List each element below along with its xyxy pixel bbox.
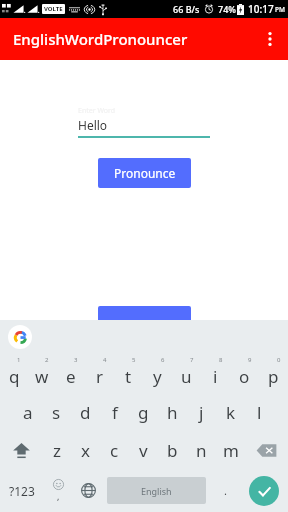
staticText: i xyxy=(213,365,218,388)
button[interactable]: 6 xyxy=(143,353,172,393)
staticText: 7 xyxy=(190,356,194,364)
button[interactable]: 9 xyxy=(230,353,259,393)
button[interactable]: x xyxy=(71,431,100,469)
button[interactable]: . xyxy=(210,469,240,512)
button[interactable]: Change language xyxy=(73,469,103,512)
staticText: k xyxy=(226,401,236,424)
staticText: f xyxy=(112,401,118,424)
button[interactable]: l xyxy=(245,393,274,431)
staticText: g xyxy=(138,401,149,424)
button[interactable]: g xyxy=(129,393,158,431)
staticText: n xyxy=(196,439,207,462)
button[interactable]: v xyxy=(129,431,158,469)
staticText: 8 xyxy=(219,356,223,364)
staticText: English xyxy=(141,485,172,497)
staticText: ?123 xyxy=(9,483,35,499)
staticText: Pronounce xyxy=(114,165,176,181)
button[interactable]: f xyxy=(100,393,129,431)
button[interactable]: j xyxy=(187,393,216,431)
button[interactable]: 1 xyxy=(0,353,28,393)
staticText: l xyxy=(257,401,262,424)
staticText: v xyxy=(139,439,148,462)
button[interactable]: Delete xyxy=(245,431,288,469)
button[interactable]: Emoji xyxy=(44,469,73,512)
staticText: 2 xyxy=(45,356,49,364)
staticText: s xyxy=(52,401,61,424)
staticText: p xyxy=(268,365,279,388)
staticText: 4 xyxy=(103,356,107,364)
button[interactable]: Enter xyxy=(240,469,288,512)
staticText: d xyxy=(80,401,91,424)
button[interactable]: 0 xyxy=(259,353,288,393)
staticText: c xyxy=(110,439,119,462)
staticText: 3 xyxy=(74,356,78,364)
button[interactable]: 2 xyxy=(28,353,56,393)
staticText: q xyxy=(9,365,20,388)
staticText: e xyxy=(66,365,76,388)
staticText: t xyxy=(125,365,132,388)
button[interactable]: d xyxy=(71,393,100,431)
button[interactable]: English xyxy=(107,477,206,504)
button[interactable]: n xyxy=(187,431,216,469)
staticText: EnglishWordPronouncer xyxy=(13,29,188,49)
staticText: 5 xyxy=(132,356,136,364)
button[interactable]: 5 xyxy=(114,353,143,393)
staticText: , xyxy=(57,490,60,502)
button[interactable]: Google xyxy=(8,325,32,349)
button[interactable]: h xyxy=(158,393,187,431)
staticText: m xyxy=(223,439,239,462)
button[interactable]: c xyxy=(100,431,129,469)
staticText: VOLTE xyxy=(44,5,63,13)
button[interactable]: m xyxy=(216,431,245,469)
staticText: o xyxy=(239,365,250,388)
staticText: 9 xyxy=(248,356,252,364)
staticText: 0 xyxy=(277,356,281,364)
staticText: PM xyxy=(275,5,285,14)
staticText: a xyxy=(23,401,33,424)
staticText: u xyxy=(181,365,192,388)
staticText: 74% xyxy=(218,3,236,15)
button[interactable] xyxy=(98,306,191,336)
button[interactable]: 8 xyxy=(201,353,230,393)
staticText: y xyxy=(153,365,162,388)
button[interactable]: Hello xyxy=(78,117,210,138)
staticText: . xyxy=(224,483,227,498)
staticText: b xyxy=(167,439,178,462)
staticText: 1 xyxy=(17,356,21,364)
staticText: Enter Word xyxy=(78,106,116,116)
button[interactable]: 7 xyxy=(172,353,201,393)
button[interactable]: k xyxy=(216,393,245,431)
button[interactable]: More options xyxy=(252,21,288,57)
button[interactable]: s xyxy=(42,393,71,431)
staticText: Hello xyxy=(78,117,108,133)
button[interactable]: 3 xyxy=(56,353,85,393)
staticText: r xyxy=(96,365,104,388)
staticText: 10:17 xyxy=(248,2,274,16)
staticText: j xyxy=(199,401,204,424)
button[interactable]: a xyxy=(13,393,42,431)
staticText: z xyxy=(53,439,61,462)
staticText: 66 B/s xyxy=(173,3,200,15)
button[interactable]: ?123 xyxy=(0,469,44,512)
staticText: 6 xyxy=(161,356,165,364)
button[interactable]: Pronounce xyxy=(98,158,191,188)
button[interactable]: z xyxy=(42,431,71,469)
button[interactable]: b xyxy=(158,431,187,469)
staticText: h xyxy=(167,401,178,424)
button[interactable]: 4 xyxy=(85,353,114,393)
staticText: x xyxy=(81,439,90,462)
button[interactable]: Shift xyxy=(0,431,42,469)
staticText: w xyxy=(35,365,49,388)
